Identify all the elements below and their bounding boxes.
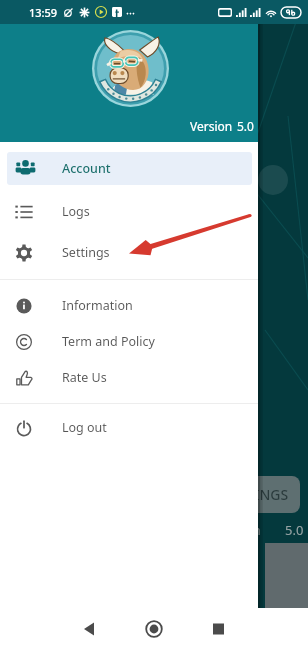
- staticText: Settings: [62, 244, 110, 261]
- button[interactable]: Account: [7, 152, 252, 185]
- button[interactable]: Log out: [0, 410, 258, 446]
- staticText: Term and Policy: [62, 333, 155, 350]
- staticText: 13:59: [29, 5, 58, 20]
- button[interactable]: SETTINGS: [212, 476, 300, 513]
- button[interactable]: Home: [134, 608, 174, 650]
- staticText: Logs: [62, 203, 90, 220]
- button[interactable]: Information: [0, 288, 258, 324]
- staticText: Rate Us: [62, 369, 107, 386]
- staticText: Version: [190, 118, 233, 134]
- staticText: Log out: [62, 419, 107, 436]
- button[interactable]: Recent apps: [198, 608, 238, 650]
- staticText: Account: [62, 160, 111, 177]
- staticText: 5.0: [285, 521, 304, 539]
- button[interactable]: Rate Us: [0, 360, 258, 396]
- staticText: ···: [126, 5, 135, 20]
- button[interactable]: Back: [70, 608, 110, 650]
- button[interactable]: Term and Policy: [0, 324, 258, 360]
- staticText: Version: [215, 521, 261, 539]
- staticText: SETTINGS: [223, 485, 289, 504]
- button[interactable]: Settings: [0, 235, 258, 271]
- staticText: 5.0: [237, 118, 254, 134]
- staticText: Information: [62, 297, 133, 314]
- button[interactable]: Logs: [0, 194, 258, 230]
